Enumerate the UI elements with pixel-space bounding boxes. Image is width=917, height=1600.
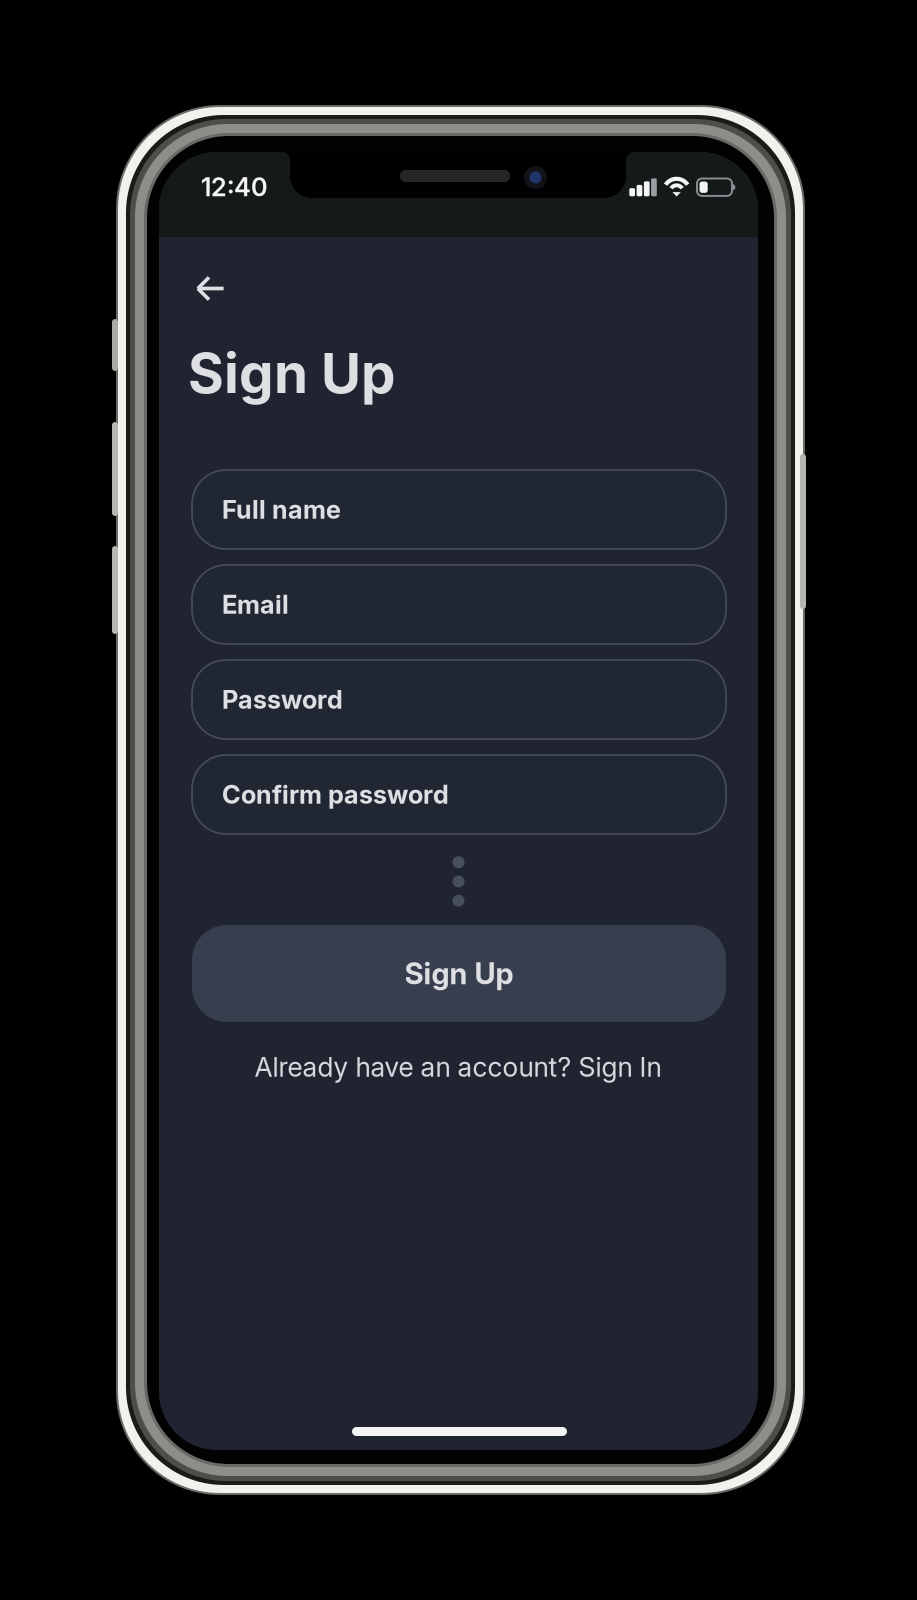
- button[interactable]: Back: [182, 262, 239, 315]
- staticText: Confirm password: [222, 779, 449, 810]
- staticText: Sign Up: [188, 340, 395, 406]
- staticText: Full name: [222, 494, 341, 525]
- button[interactable]: Already have an account? Sign In: [252, 1046, 664, 1088]
- button[interactable]: Password: [192, 660, 726, 739]
- button[interactable]: Confirm password: [192, 755, 726, 834]
- button[interactable]: Sign Up: [192, 925, 726, 1022]
- button[interactable]: Full name: [192, 470, 726, 549]
- staticText: Email: [222, 589, 289, 620]
- staticText: 12:40: [201, 172, 268, 202]
- staticText: Already have an account? Sign In: [254, 1051, 661, 1083]
- staticText: Password: [222, 684, 343, 715]
- staticText: Sign Up: [404, 956, 513, 991]
- button[interactable]: Email: [192, 565, 726, 644]
